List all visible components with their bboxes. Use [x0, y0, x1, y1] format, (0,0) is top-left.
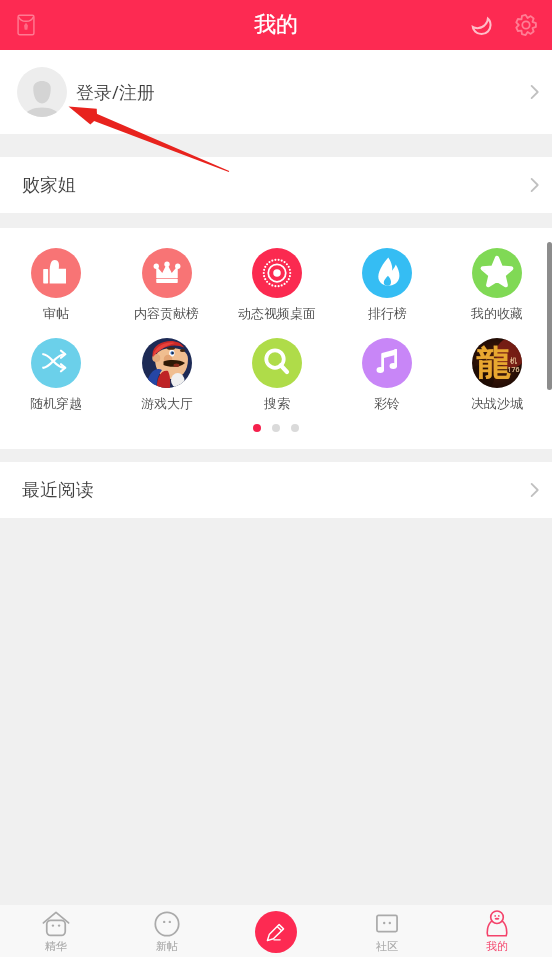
button[interactable]: Compose post: [255, 911, 297, 953]
button[interactable]: 搜索: [222, 338, 332, 411]
button[interactable]: 审帖: [0, 248, 111, 321]
staticText: 败家姐: [22, 174, 76, 197]
button[interactable]: Red packet: [4, 3, 48, 47]
button[interactable]: 最近阅读: [0, 462, 552, 518]
button[interactable]: 新帖: [111, 905, 222, 957]
button[interactable]: 彩铃: [332, 338, 442, 411]
staticText: 彩铃: [374, 395, 400, 411]
staticText: 最近阅读: [22, 479, 94, 502]
staticText: 精华: [45, 939, 67, 953]
button[interactable]: 动态视频桌面: [222, 248, 332, 321]
button[interactable]: Night mode: [460, 3, 504, 47]
staticText: 龍: [476, 342, 510, 385]
staticText: 审帖: [43, 305, 69, 321]
staticText: 社区: [376, 939, 398, 953]
button[interactable]: 我的: [442, 905, 552, 957]
button[interactable]: 精华: [0, 905, 111, 957]
button[interactable]: Settings: [504, 3, 548, 47]
staticText: 机 176: [507, 356, 520, 375]
staticText: 决战沙城: [471, 395, 523, 411]
staticText: 我的收藏: [471, 305, 523, 321]
staticText: 我的: [254, 11, 298, 39]
button[interactable]: 随机穿越: [0, 338, 111, 411]
button[interactable]: 龍: [442, 338, 552, 411]
staticText: 登录/注册: [76, 80, 155, 105]
staticText: 新帖: [156, 939, 178, 953]
staticText: 动态视频桌面: [238, 305, 316, 321]
staticText: 我的: [486, 939, 508, 953]
button[interactable]: 游戏大厅: [111, 338, 222, 411]
button[interactable]: 内容贡献榜: [111, 248, 222, 321]
button[interactable]: 登录/注册: [0, 50, 552, 134]
staticText: 随机穿越: [30, 395, 82, 411]
button[interactable]: 排行榜: [332, 248, 442, 321]
staticText: 搜索: [264, 395, 290, 411]
staticText: 排行榜: [368, 305, 407, 321]
button[interactable]: 败家姐: [0, 157, 552, 213]
staticText: 游戏大厅: [141, 395, 193, 411]
button[interactable]: 社区: [332, 905, 442, 957]
staticText: 内容贡献榜: [134, 305, 199, 321]
button[interactable]: 我的收藏: [442, 248, 552, 321]
